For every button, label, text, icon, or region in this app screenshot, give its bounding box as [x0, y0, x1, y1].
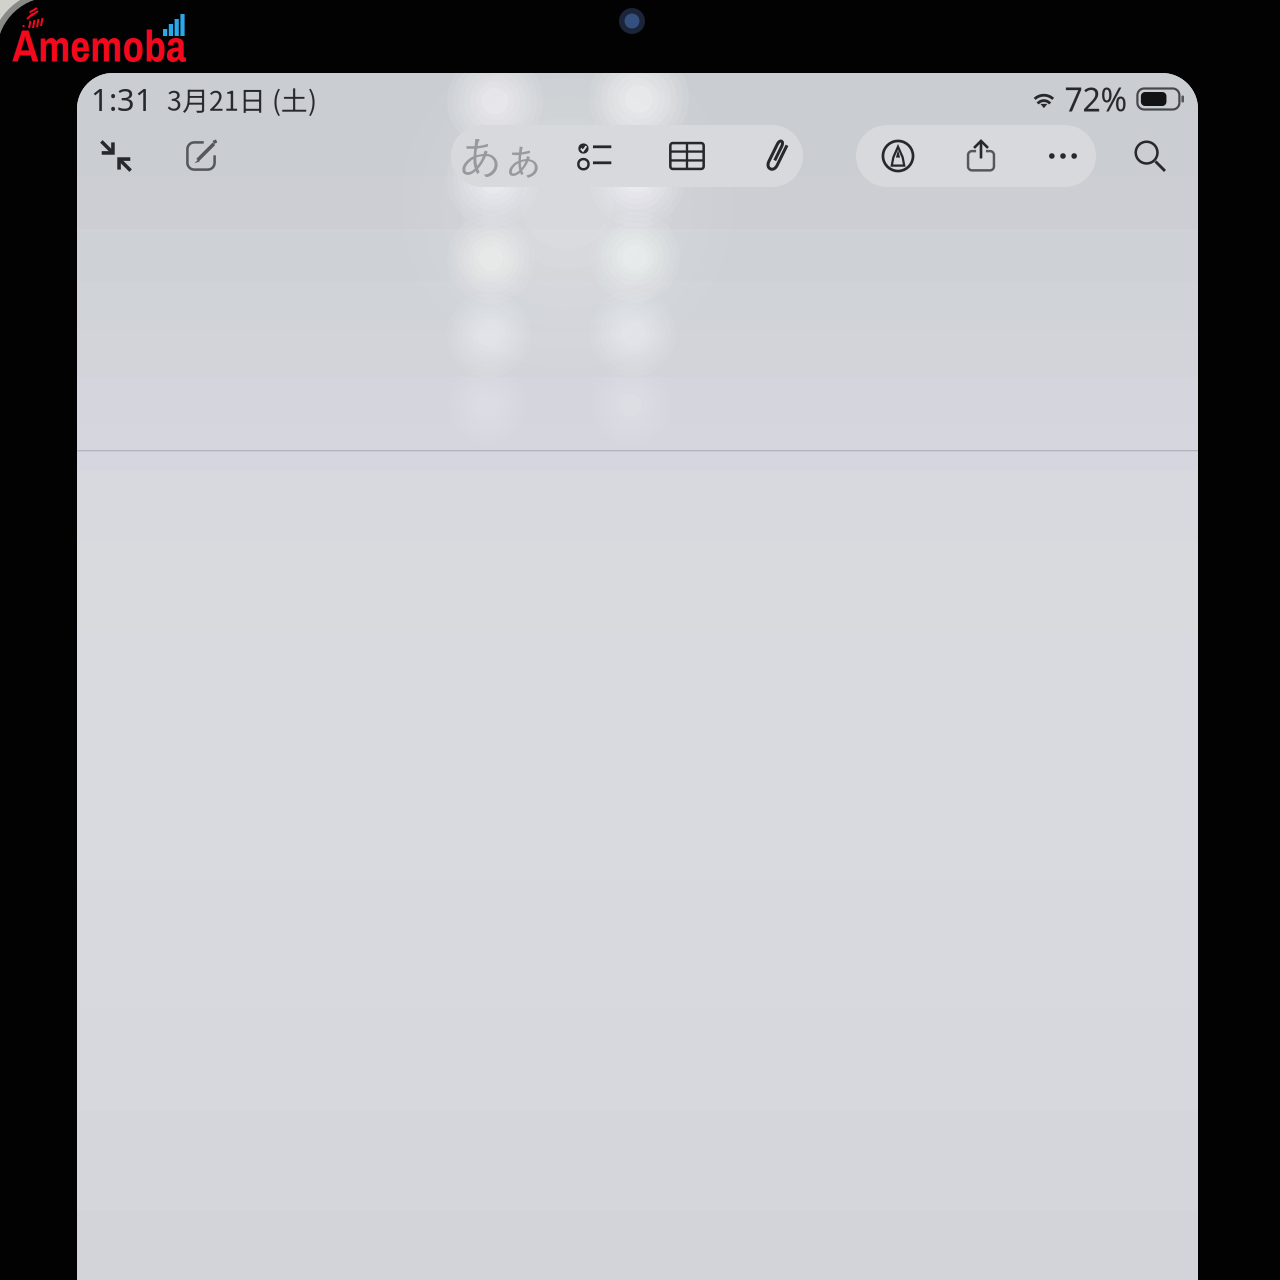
- button[interactable]: Checklist: [558, 125, 632, 187]
- button[interactable]: Search: [1113, 125, 1187, 187]
- staticText: 72%: [1064, 78, 1127, 120]
- button[interactable]: Attach: [740, 125, 814, 187]
- button[interactable]: Share: [944, 125, 1018, 187]
- button[interactable]: More: [1026, 125, 1100, 187]
- button[interactable]: New Note: [164, 125, 238, 187]
- button[interactable]: Collapse: [79, 125, 153, 187]
- staticText: あぁ: [460, 131, 544, 181]
- button[interactable]: Text format: [460, 125, 544, 187]
- button[interactable]: Markup: [861, 125, 935, 187]
- staticText: Amemoba: [12, 16, 186, 75]
- staticText: 3月21日 (土): [167, 80, 317, 118]
- button[interactable]: Table: [650, 125, 724, 187]
- staticText: 1:31: [91, 79, 153, 119]
